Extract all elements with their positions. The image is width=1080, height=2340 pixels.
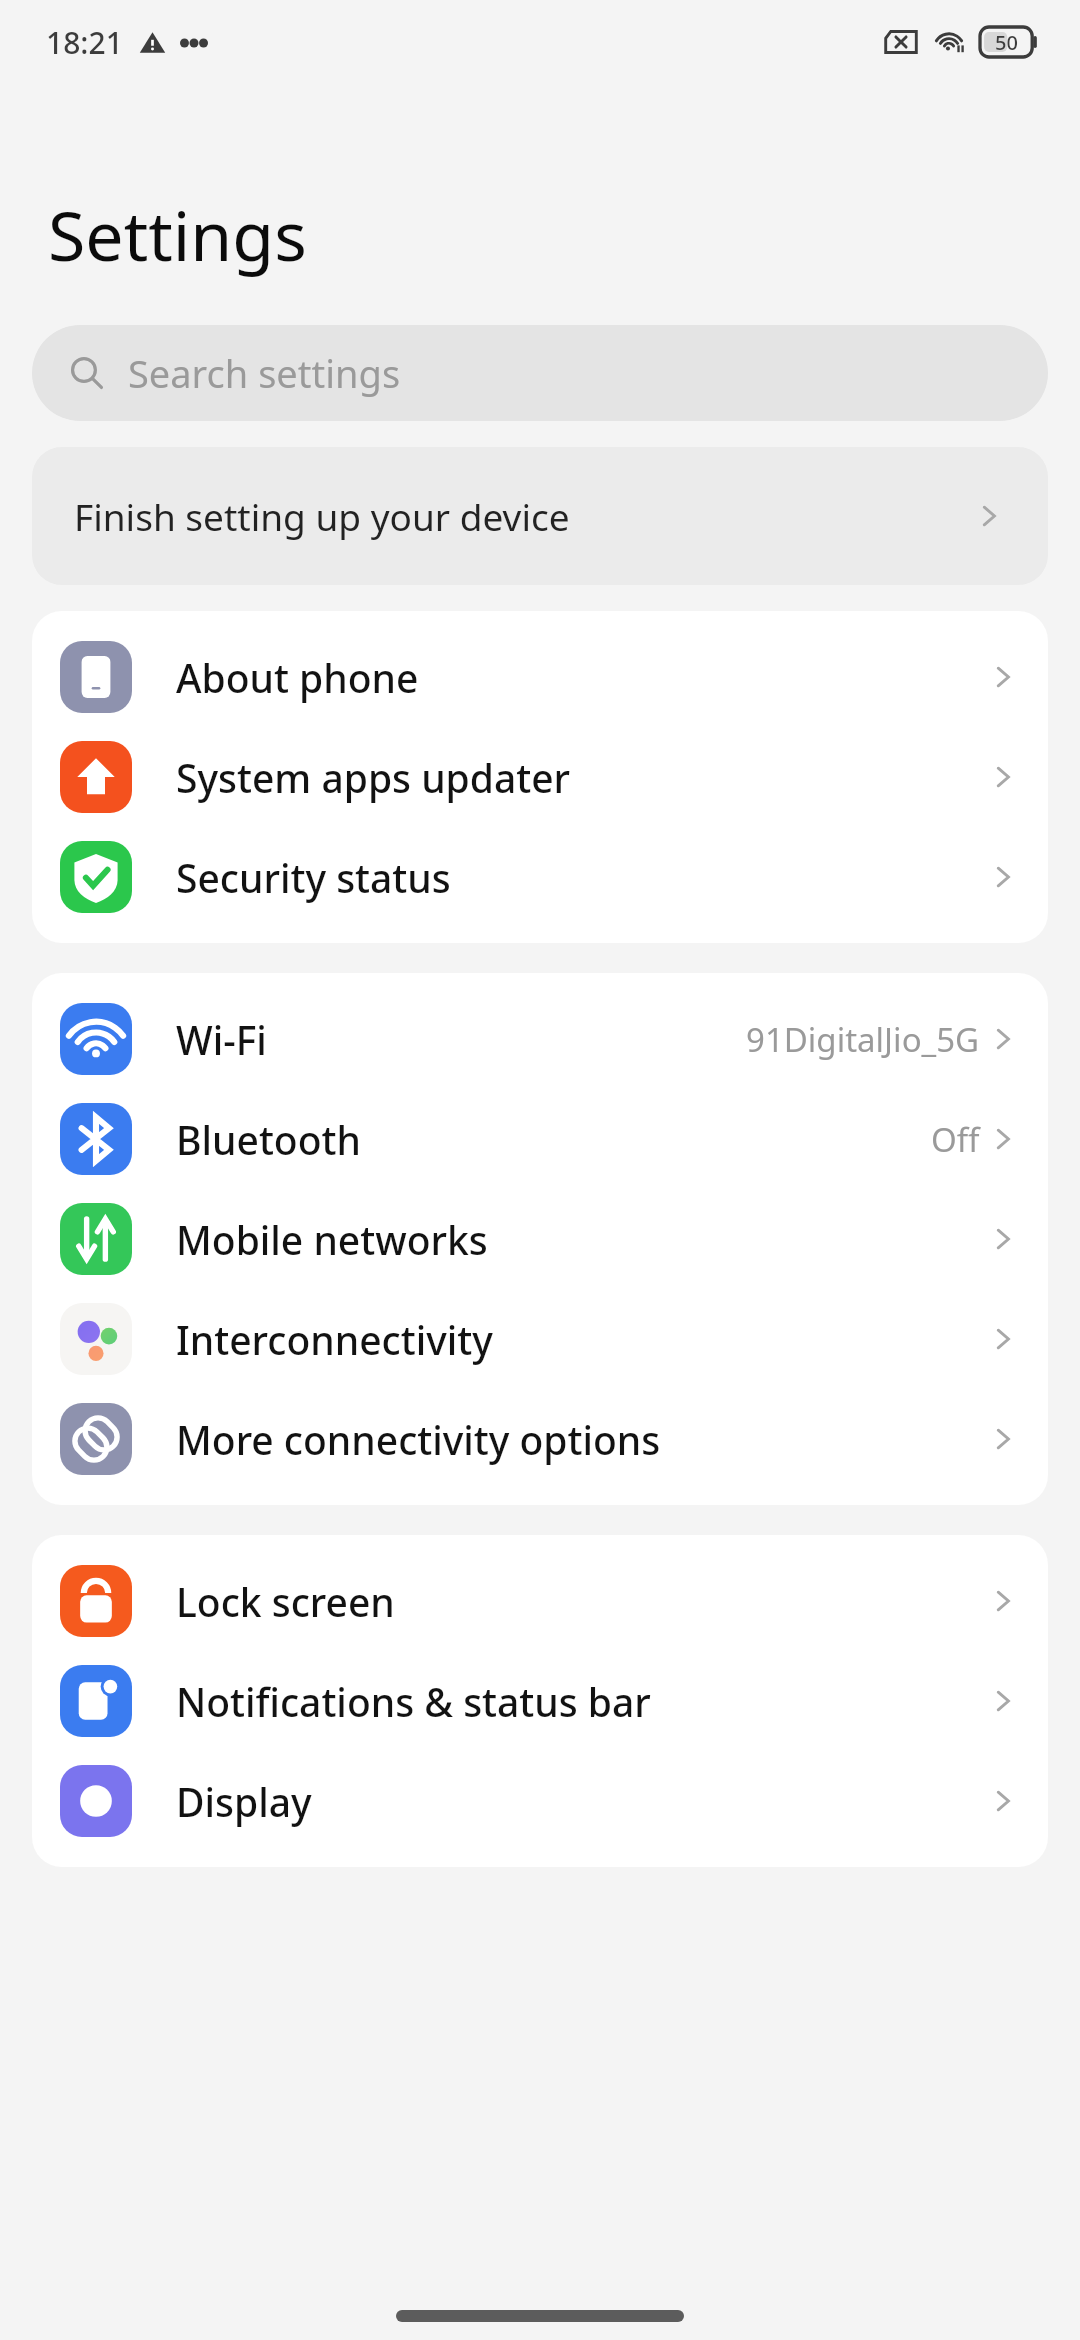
staticText: Finish setting up your device <box>74 491 972 541</box>
staticText: About phone <box>176 651 986 704</box>
staticText: 91DigitalJio_5G <box>746 1017 980 1062</box>
staticText: Notifications & status bar <box>176 1675 986 1728</box>
button[interactable]: Mobile networks <box>32 1189 1048 1289</box>
staticText: Lock screen <box>176 1575 986 1628</box>
button[interactable]: System apps updater <box>32 727 1048 827</box>
staticText: 50 <box>995 29 1018 56</box>
button[interactable]: Lock screen <box>32 1551 1048 1651</box>
button[interactable]: Bluetooth <box>32 1089 1048 1189</box>
button[interactable]: Search settings <box>32 325 1048 421</box>
button[interactable]: About phone <box>32 627 1048 727</box>
button[interactable]: Interconnectivity <box>32 1289 1048 1389</box>
button[interactable]: Finish setting up your device <box>32 447 1048 585</box>
staticText: Settings <box>48 188 307 281</box>
staticText: Display <box>176 1775 986 1828</box>
staticText: Off <box>931 1117 980 1162</box>
staticText: Interconnectivity <box>176 1313 986 1366</box>
button[interactable]: Notifications & status bar <box>32 1651 1048 1751</box>
button[interactable]: More connectivity options <box>32 1389 1048 1489</box>
button[interactable]: Wi-Fi <box>32 989 1048 1089</box>
staticText: More connectivity options <box>176 1413 986 1466</box>
staticText: Wi-Fi <box>176 1013 746 1066</box>
staticText: System apps updater <box>176 751 986 804</box>
staticText: Mobile networks <box>176 1213 986 1266</box>
staticText: Security status <box>176 851 986 904</box>
staticText: Bluetooth <box>176 1113 931 1166</box>
button[interactable]: Security status <box>32 827 1048 927</box>
button[interactable]: Display <box>32 1751 1048 1851</box>
staticText: Search settings <box>128 347 401 399</box>
staticText: 18:21 <box>46 22 123 63</box>
